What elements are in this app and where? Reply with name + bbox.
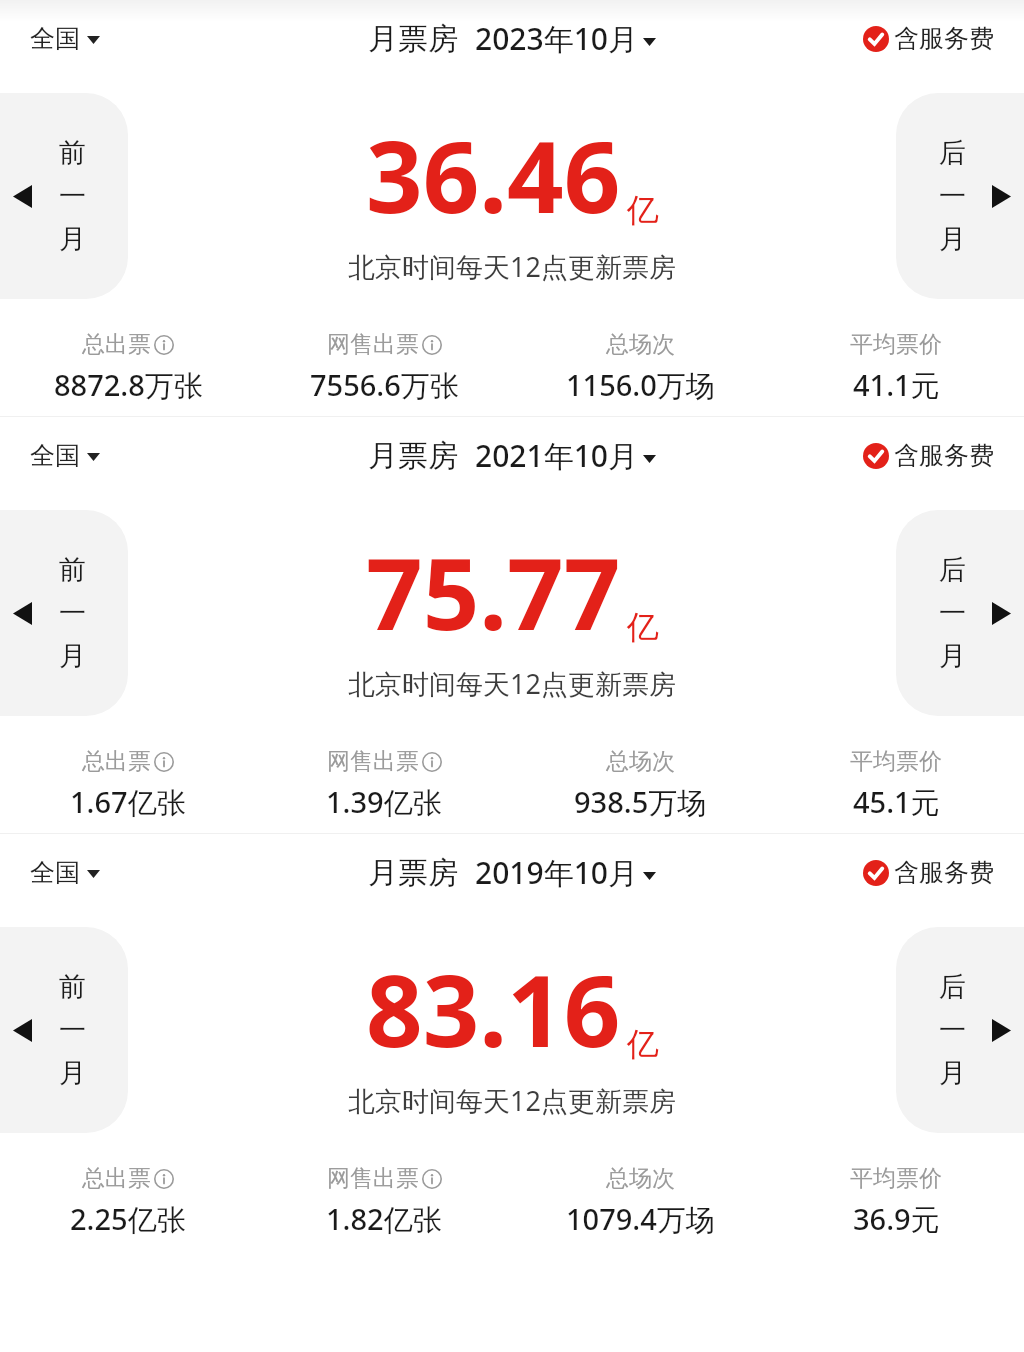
button[interactable]: 总出票 (0, 330, 256, 405)
button[interactable]: 后一月 (896, 927, 1024, 1133)
button[interactable]: 平均票价 (768, 330, 1024, 405)
staticText: 1.67亿张 (70, 782, 186, 822)
staticText: 平均票价 (850, 747, 942, 776)
staticText: 总场次 (606, 747, 675, 776)
staticText: 月 (939, 1056, 966, 1090)
staticText: 月票房 (368, 20, 458, 58)
staticText: 含服务费 (894, 857, 994, 888)
staticText: 总出票 (82, 747, 151, 776)
staticText: 北京时间每天12点更新票房 (348, 665, 676, 702)
staticText: 1.39亿张 (326, 782, 442, 822)
staticText: 后 (939, 553, 966, 587)
staticText: 月 (939, 222, 966, 256)
staticText: 总出票 (82, 330, 151, 359)
staticText: 北京时间每天12点更新票房 (348, 1082, 676, 1119)
staticText: 平均票价 (850, 1164, 942, 1193)
staticText: 月票房 (368, 437, 458, 475)
staticText: 1.82亿张 (326, 1199, 442, 1239)
button[interactable]: 平均票价 (768, 747, 1024, 822)
button[interactable]: 总出票 (0, 1164, 256, 1239)
staticText: 2.25亿张 (70, 1199, 186, 1239)
button[interactable]: 网售出票 (256, 330, 512, 405)
staticText: 含服务费 (894, 23, 994, 54)
staticText: 含服务费 (894, 440, 994, 471)
button[interactable]: 月票房 (364, 12, 660, 65)
staticText: 1079.4万场 (566, 1199, 715, 1239)
staticText: 83.16 (366, 941, 621, 1076)
staticText: 7556.6万张 (310, 365, 459, 405)
staticText: 一 (59, 179, 86, 213)
staticText: 月 (59, 1056, 86, 1090)
staticText: 41.1元 (853, 365, 940, 405)
staticText: 总场次 (606, 330, 675, 359)
staticText: 北京时间每天12点更新票房 (348, 248, 676, 285)
button[interactable]: 前一月 (0, 93, 128, 299)
staticText: 前 (59, 553, 86, 587)
staticText: 亿 (627, 1024, 659, 1064)
button[interactable]: 月票房 (364, 429, 660, 482)
staticText: 月 (59, 639, 86, 673)
staticText: 938.5万场 (574, 782, 707, 822)
staticText: 总场次 (606, 1164, 675, 1193)
staticText: 75.77 (366, 524, 621, 659)
button[interactable]: 全国 (26, 851, 104, 894)
button[interactable]: 平均票价 (768, 1164, 1024, 1239)
staticText: 一 (939, 179, 966, 213)
button[interactable]: 月票房 (364, 846, 660, 899)
staticText: 一 (939, 1013, 966, 1047)
staticText: 月 (939, 639, 966, 673)
button[interactable]: 总场次 (512, 330, 768, 405)
button[interactable]: 含服务费 (861, 434, 996, 477)
staticText: 一 (939, 596, 966, 630)
staticText: 45.1元 (853, 782, 940, 822)
staticText: 月票房 (368, 854, 458, 892)
button[interactable]: 网售出票 (256, 1164, 512, 1239)
button[interactable]: 网售出票 (256, 747, 512, 822)
staticText: 8872.8万张 (54, 365, 203, 405)
staticText: 亿 (627, 190, 659, 230)
staticText: 前 (59, 970, 86, 1004)
staticText: 1156.0万场 (566, 365, 715, 405)
staticText: 一 (59, 596, 86, 630)
staticText: 36.46 (366, 107, 621, 242)
button[interactable]: 总场次 (512, 1164, 768, 1239)
staticText: 网售出票 (327, 747, 419, 776)
staticText: 2019年10月 (475, 852, 638, 893)
staticText: 后 (939, 970, 966, 1004)
staticText: 2021年10月 (475, 435, 638, 476)
staticText: 全国 (30, 23, 80, 54)
staticText: 网售出票 (327, 330, 419, 359)
staticText: 一 (59, 1013, 86, 1047)
button[interactable]: 全国 (26, 434, 104, 477)
staticText: 亿 (627, 607, 659, 647)
button[interactable]: 总出票 (0, 747, 256, 822)
button[interactable]: 总场次 (512, 747, 768, 822)
button[interactable]: 全国 (26, 17, 104, 60)
staticText: 总出票 (82, 1164, 151, 1193)
staticText: 36.9元 (853, 1199, 940, 1239)
button[interactable]: 前一月 (0, 510, 128, 716)
staticText: 网售出票 (327, 1164, 419, 1193)
staticText: 前 (59, 136, 86, 170)
staticText: 全国 (30, 440, 80, 471)
button[interactable]: 含服务费 (861, 851, 996, 894)
staticText: 全国 (30, 857, 80, 888)
button[interactable]: 后一月 (896, 93, 1024, 299)
staticText: 2023年10月 (475, 18, 638, 59)
staticText: 后 (939, 136, 966, 170)
staticText: 平均票价 (850, 330, 942, 359)
staticText: 月 (59, 222, 86, 256)
button[interactable]: 前一月 (0, 927, 128, 1133)
button[interactable]: 含服务费 (861, 17, 996, 60)
button[interactable]: 后一月 (896, 510, 1024, 716)
